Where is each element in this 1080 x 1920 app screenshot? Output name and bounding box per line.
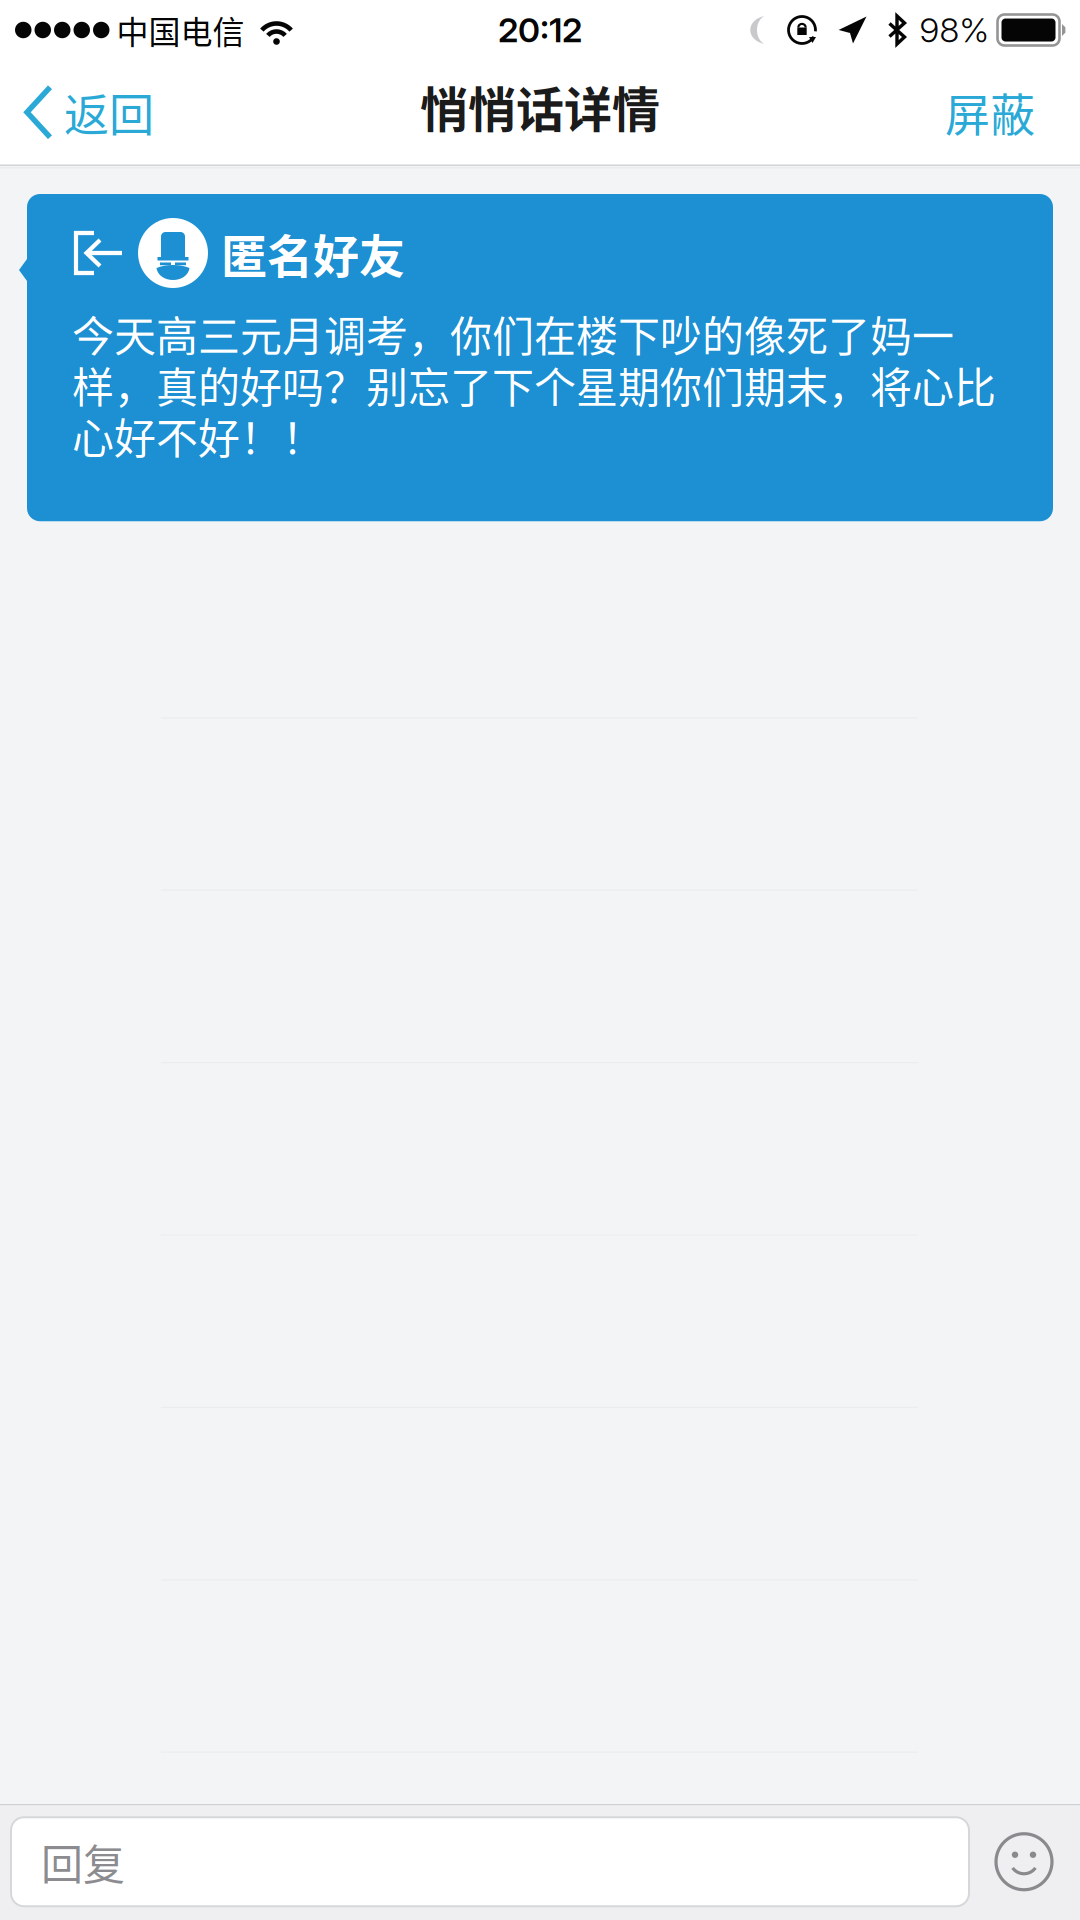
staticText: 20:12: [498, 9, 582, 50]
staticText: 今天高三元月调考，你们在楼下吵的像死了妈一样，真的好吗？别忘了下个星期你们期末，…: [72, 308, 996, 461]
staticText: 悄悄话详情: [420, 71, 660, 141]
button[interactable]: 表情: [969, 1817, 1079, 1906]
staticText: 返回: [64, 80, 154, 145]
staticText: 屏蔽: [945, 80, 1035, 145]
staticText: 98%: [919, 9, 988, 50]
staticText: 匿名好友: [221, 220, 405, 286]
staticText: 中国电信: [116, 7, 244, 53]
button[interactable]: 回复: [11, 1817, 969, 1906]
button[interactable]: 返回: [0, 60, 172, 164]
button[interactable]: 屏蔽: [927, 60, 1080, 164]
staticText: 回复: [41, 1831, 125, 1892]
